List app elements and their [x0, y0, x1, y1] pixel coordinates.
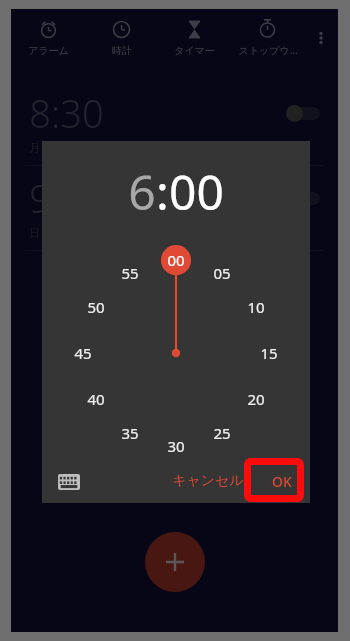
staticText: 9:00	[29, 172, 104, 224]
staticText: ストップウ…	[238, 43, 298, 57]
button[interactable]: アラームのオンオフ	[286, 104, 322, 122]
button[interactable]: 9:00	[11, 166, 338, 250]
staticText: キャンセル	[172, 472, 244, 490]
button[interactable]: キーボード入力に切り替え	[56, 469, 82, 495]
staticText: 日・土	[29, 226, 62, 240]
staticText: 30	[167, 436, 185, 456]
button[interactable]: 00	[169, 159, 224, 224]
staticText: 月・火・水・木・金	[29, 141, 128, 155]
staticText: アラーム	[28, 44, 69, 57]
button[interactable]: タイマー	[158, 9, 231, 67]
staticText: 50	[87, 297, 105, 317]
staticText: OK	[272, 472, 292, 491]
button[interactable]: アラームを追加	[145, 532, 205, 592]
button[interactable]: 6	[128, 159, 156, 224]
staticText: :	[156, 159, 169, 224]
button[interactable]: OK	[262, 464, 302, 499]
staticText: 00	[167, 250, 185, 270]
staticText: タイマー	[174, 44, 215, 57]
staticText: 20	[247, 389, 265, 409]
staticText: 25	[213, 423, 231, 443]
button[interactable]: 時計	[85, 9, 158, 67]
button[interactable]: キャンセル	[164, 464, 252, 498]
staticText: 時計	[112, 44, 132, 57]
staticText: 45	[74, 343, 92, 363]
staticText: 05	[213, 263, 231, 283]
staticText: 6	[128, 159, 156, 224]
staticText: 10	[247, 297, 265, 317]
button[interactable]: ストップウ…	[231, 9, 304, 67]
button[interactable]: 00	[60, 237, 292, 469]
staticText: 15	[260, 343, 278, 363]
button[interactable]: 8:30	[11, 81, 338, 165]
staticText: 8:30	[29, 87, 104, 139]
button[interactable]: アラームのオンオフ	[286, 189, 322, 207]
button[interactable]: その他のオプション	[304, 9, 338, 67]
button[interactable]: アラーム	[11, 9, 85, 67]
staticText: 55	[121, 263, 139, 283]
staticText: 40	[87, 389, 105, 409]
staticText: 35	[121, 423, 139, 443]
staticText: 00	[169, 159, 224, 224]
